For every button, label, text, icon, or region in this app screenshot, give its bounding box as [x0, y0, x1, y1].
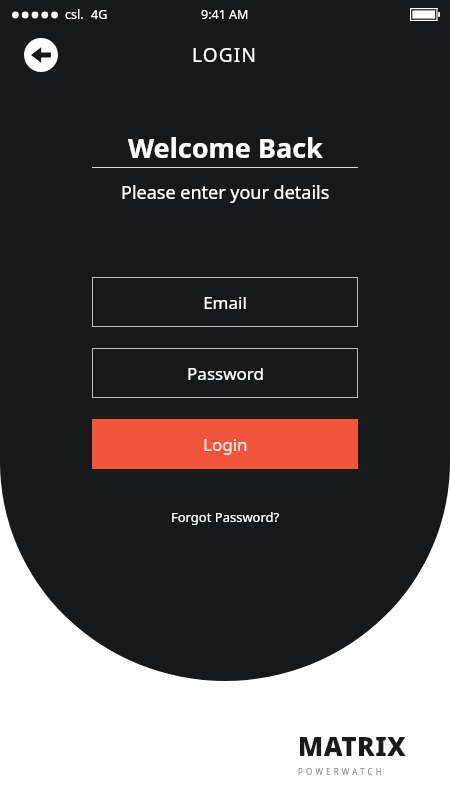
staticText: csl. [65, 6, 84, 23]
button[interactable]: Password [92, 348, 358, 398]
staticText: Please enter your details [121, 180, 330, 205]
button[interactable]: Back [24, 38, 58, 72]
button[interactable]: Forgot Password? [165, 506, 286, 528]
staticText: Login [203, 433, 248, 456]
staticText: POWERWATCH [298, 766, 385, 777]
button[interactable]: Email [92, 277, 358, 327]
staticText: Password [187, 362, 264, 385]
staticText: LOGIN [192, 42, 258, 68]
staticText: Email [203, 291, 247, 314]
staticText: Forgot Password? [171, 508, 280, 526]
staticText: 9:41 AM [201, 6, 249, 23]
staticText: 4G [91, 6, 108, 23]
staticText: Welcome Back [128, 129, 323, 166]
other: Battery [410, 8, 440, 21]
button[interactable]: Login [92, 419, 358, 469]
staticText: MATRIX [298, 728, 407, 763]
